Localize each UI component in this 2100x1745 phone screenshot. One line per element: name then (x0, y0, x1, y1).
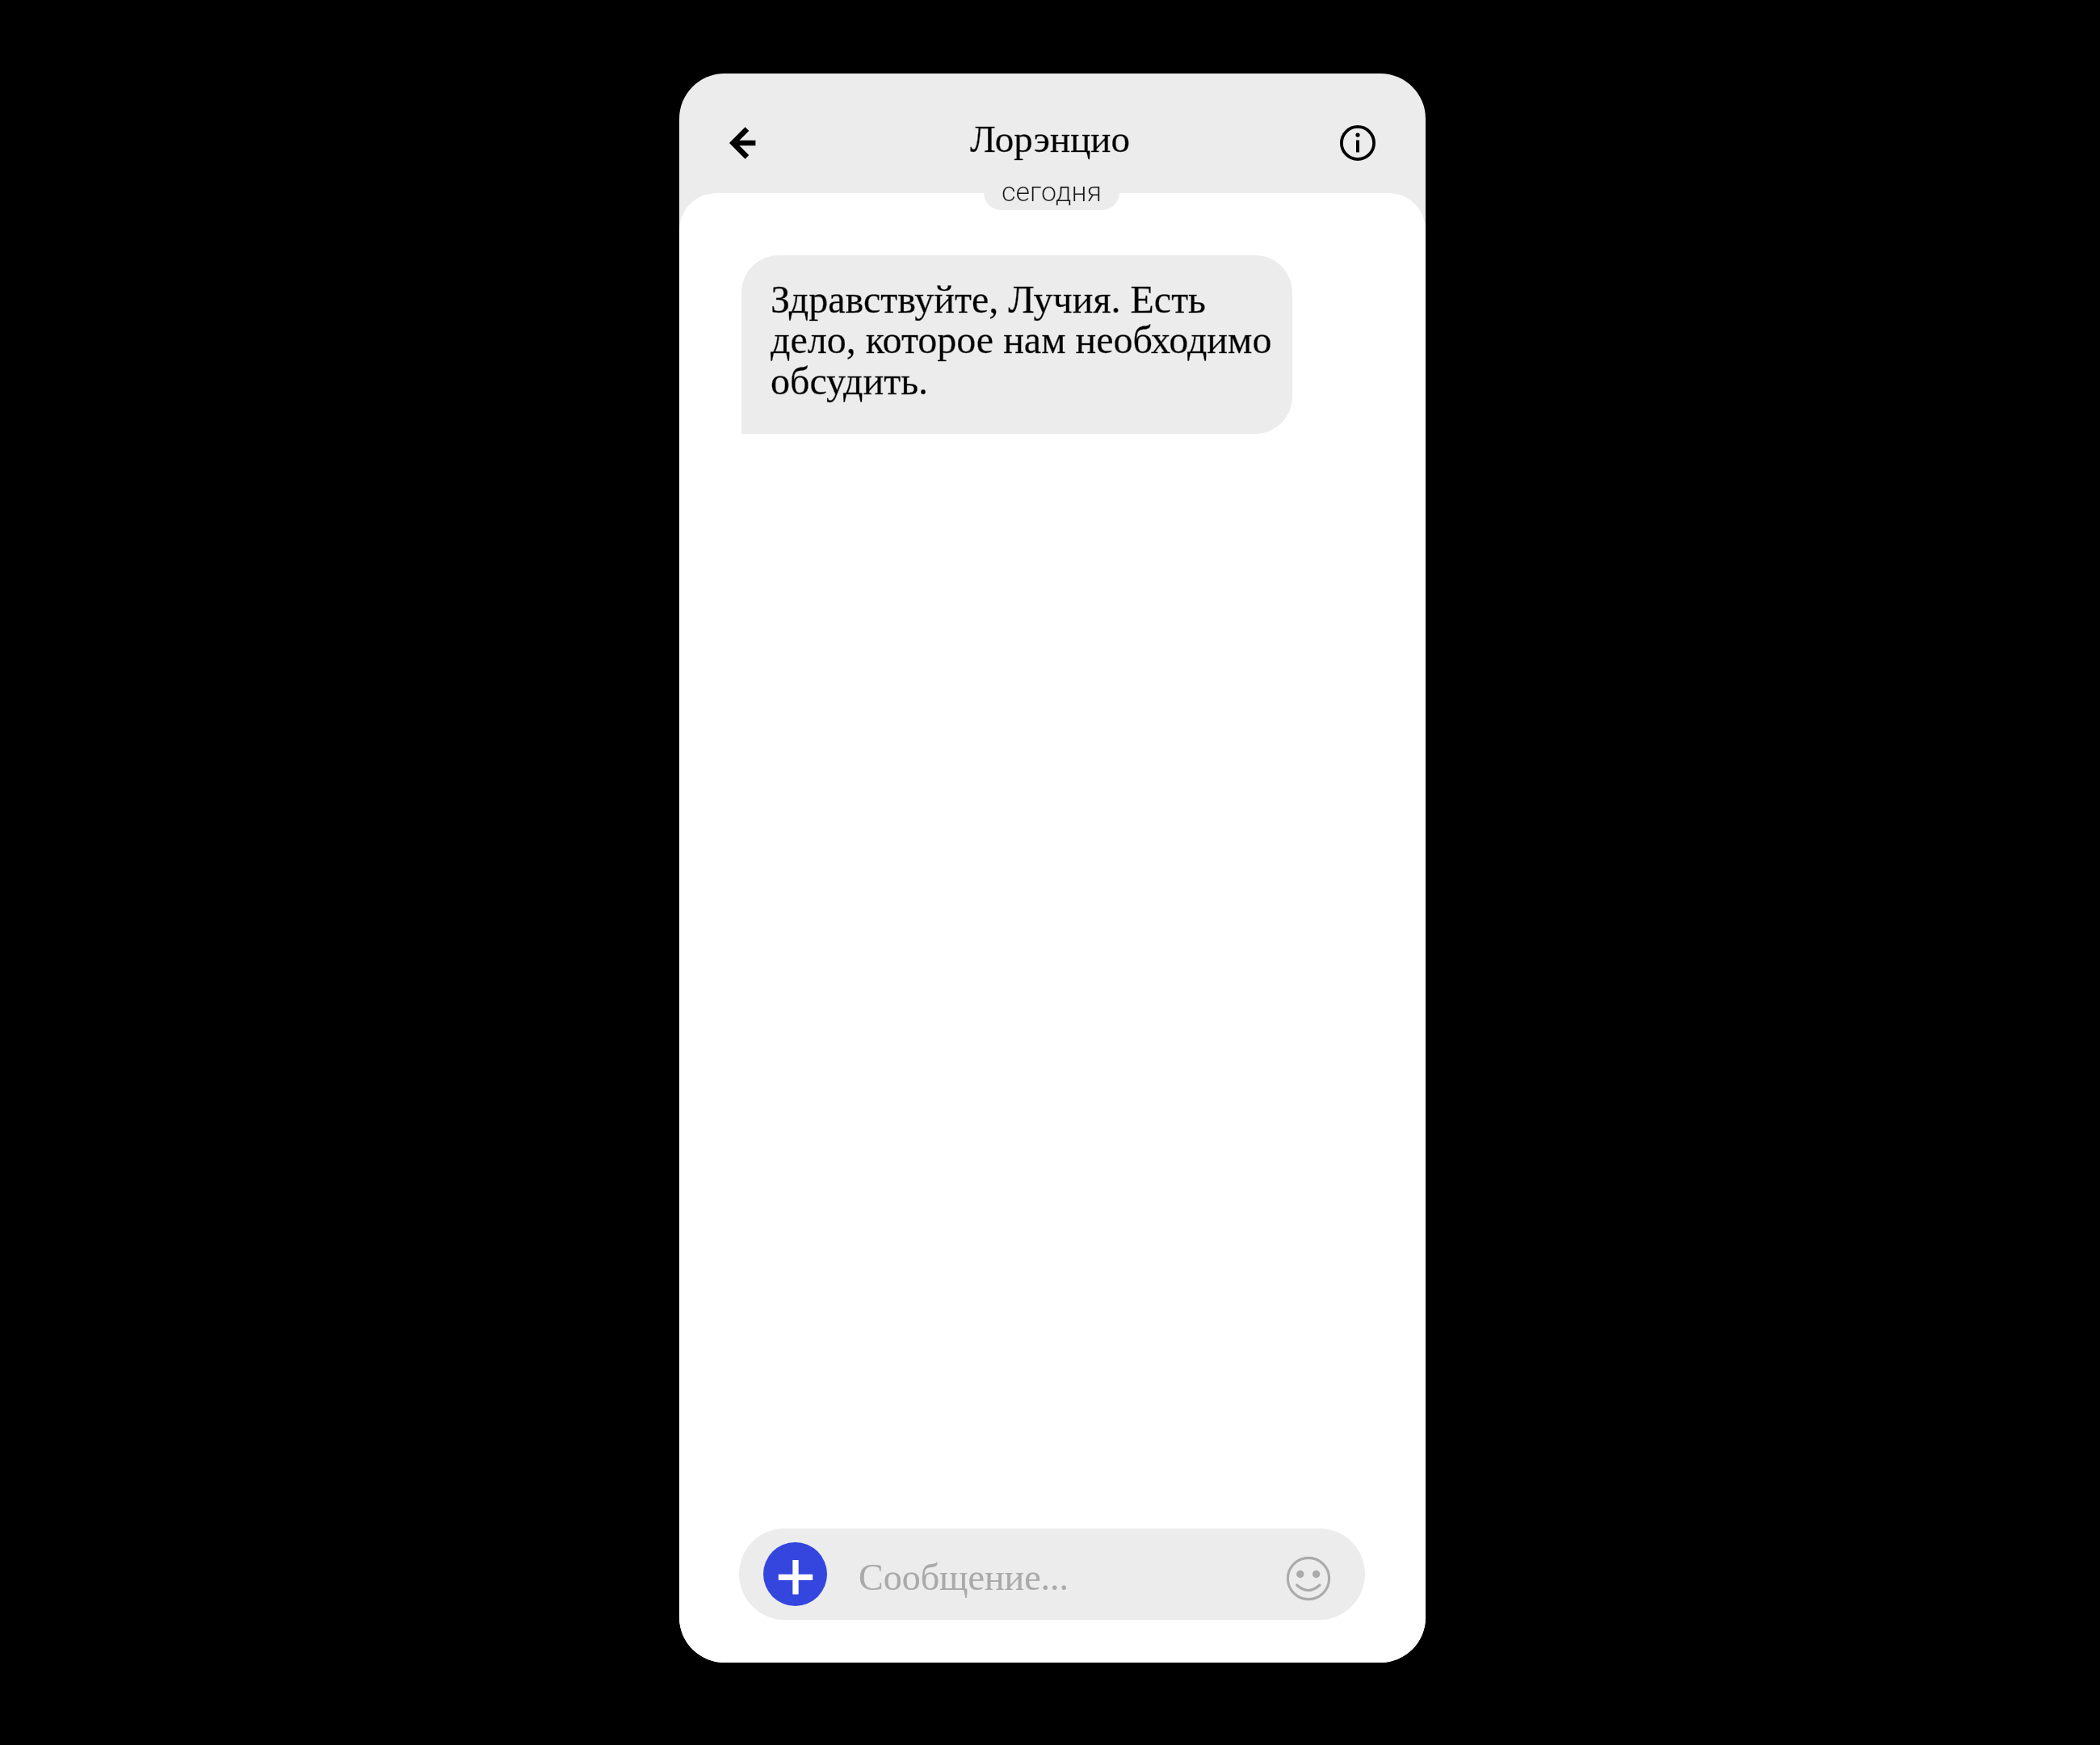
staticText: Лорэнцио (679, 118, 1423, 160)
button[interactable]: Contact info (1329, 114, 1387, 172)
staticText: Сообщение... (859, 1557, 1069, 1598)
button[interactable]: Здравствуйте, Лучия. Есть дело, которое … (741, 255, 1292, 434)
staticText: Здравствуйте, Лучия. Есть дело, которое … (771, 278, 1281, 403)
staticText: сегодня (1002, 175, 1102, 208)
staticText: Лорэнцио (679, 118, 1423, 160)
staticText: Здравствуйте, Лучия. Есть дело, которое … (771, 278, 1281, 403)
button[interactable]: Back (713, 114, 771, 172)
button[interactable]: Add attachment (763, 1542, 827, 1606)
button[interactable]: Emoji (1284, 1554, 1333, 1603)
button[interactable]: Add attachment (739, 1528, 1365, 1620)
